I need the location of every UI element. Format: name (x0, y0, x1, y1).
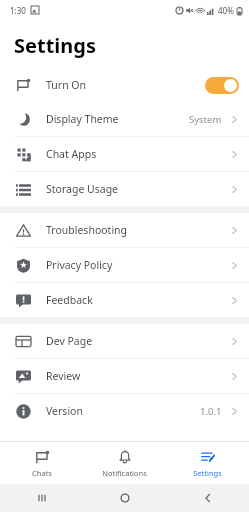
staticText: Storage Usage (46, 182, 119, 196)
button[interactable]: Back (166, 484, 249, 512)
staticText: Settings (14, 32, 96, 59)
button[interactable]: Feedback (0, 283, 249, 317)
button[interactable]: Dev Page (0, 324, 249, 358)
button[interactable]: Notifications (83, 442, 166, 484)
staticText: 1.0.1 (200, 405, 222, 418)
button[interactable]: Display Theme (0, 102, 249, 136)
button[interactable]: Review (0, 359, 249, 393)
staticText: Display Theme (46, 112, 119, 126)
button[interactable]: Chats (0, 442, 83, 484)
staticText: Privacy Policy (46, 258, 113, 272)
staticText: 40% (218, 5, 234, 16)
button[interactable]: Recent apps (0, 484, 83, 512)
staticText: Review (46, 369, 81, 383)
button[interactable]: Storage Usage (0, 172, 249, 206)
staticText: Version (46, 404, 83, 418)
button[interactable]: Privacy Policy (0, 248, 249, 282)
button[interactable]: Troubleshooting (0, 213, 249, 247)
button[interactable]: Turn On (0, 68, 249, 102)
staticText: 1:30 (10, 5, 26, 16)
staticText: Notifications (102, 468, 147, 478)
staticText: Turn On (46, 78, 87, 92)
staticText: Settings (193, 468, 222, 478)
button[interactable]: Settings (166, 442, 249, 484)
staticText: Dev Page (46, 334, 93, 348)
staticText: Chats (32, 468, 52, 478)
button[interactable]: Home (83, 484, 166, 512)
button[interactable]: Chat Apps (0, 137, 249, 171)
button[interactable]: Version (0, 394, 249, 428)
staticText: System (189, 113, 222, 126)
staticText: Feedback (46, 293, 93, 307)
staticText: Troubleshooting (46, 223, 128, 237)
staticText: Chat Apps (46, 147, 97, 161)
